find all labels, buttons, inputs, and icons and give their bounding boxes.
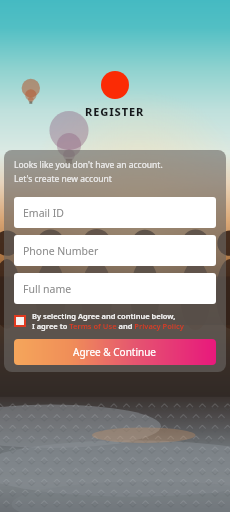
- staticText: Looks like you don't have an account.: [14, 159, 163, 171]
- staticText: REGISTER: [85, 104, 145, 119]
- staticText: I agree to Terms of Use and Privacy Poli…: [32, 321, 184, 331]
- button[interactable]: Agree & Continue: [14, 339, 216, 365]
- button[interactable]: Phone Number: [14, 235, 216, 266]
- button[interactable]: Agree to terms checkbox: [14, 311, 216, 331]
- staticText: Full name: [23, 282, 72, 296]
- staticText: Agree & Continue: [73, 345, 157, 359]
- staticText: Email ID: [23, 206, 64, 220]
- button[interactable]: Email ID: [14, 197, 216, 228]
- staticText: By selecting Agree and continue below,: [32, 311, 176, 321]
- button[interactable]: Full name: [14, 273, 216, 304]
- staticText: Let's create new account: [14, 173, 112, 185]
- staticText: Phone Number: [23, 244, 99, 258]
